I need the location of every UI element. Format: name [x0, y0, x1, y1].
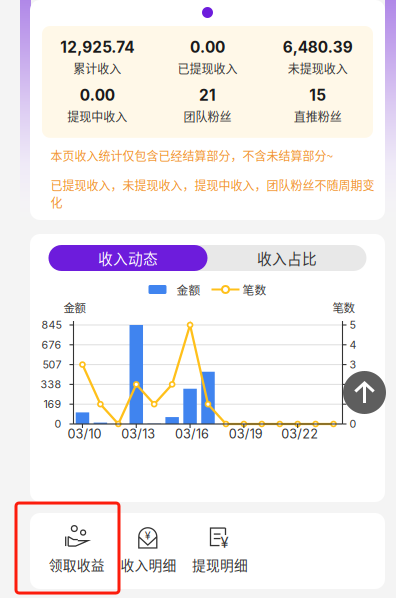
button[interactable]: 收入占比 [207, 245, 366, 271]
staticText: 0 [54, 417, 61, 430]
staticText: 4 [349, 338, 356, 351]
staticText: 5 [349, 318, 355, 331]
staticText: 收入明细 [120, 555, 176, 574]
staticText: 845 [41, 318, 61, 331]
staticText: 21 [199, 86, 216, 104]
staticText: 提现中收入 [67, 107, 127, 125]
staticText: 累计收入 [73, 60, 121, 77]
staticText: 676 [41, 338, 61, 351]
staticText: 169 [43, 398, 61, 411]
staticText: 0 [349, 417, 356, 430]
staticText: 03/10 [67, 426, 101, 442]
staticText: 0.00 [190, 38, 225, 57]
staticText: 笔数 [242, 281, 266, 298]
button[interactable]: ¥ [113, 524, 184, 576]
staticText: 直推粉丝 [294, 107, 342, 125]
staticText: 收入占比 [257, 247, 317, 269]
button[interactable]: ¥ [184, 524, 256, 576]
button[interactable]: 收入动态 [48, 245, 207, 271]
staticText: 15 [309, 86, 326, 104]
staticText: 金额 [63, 299, 85, 316]
staticText: 1 [349, 398, 353, 411]
staticText: 已提现收入 [177, 60, 237, 77]
staticText: 12,925.74 [60, 38, 134, 57]
staticText: 领取收益 [49, 555, 105, 574]
staticText: 团队粉丝 [183, 107, 231, 125]
staticText: 2 [349, 378, 356, 391]
staticText: 03/22 [281, 426, 318, 442]
staticText: 提现明细 [192, 555, 248, 574]
staticText: 金额 [176, 281, 200, 298]
button[interactable]: 领取收益 [41, 524, 113, 576]
staticText: 收入动态 [98, 247, 158, 269]
staticText: 03/13 [121, 426, 155, 442]
staticText: 本页收入统计仅包含已经结算部分，不含未结算部分~ [50, 147, 333, 164]
staticText: 507 [42, 358, 61, 371]
staticText: 03/19 [229, 426, 263, 442]
staticText: 已提现收入，未提现收入，提现中收入，团队粉丝不随周期变化 [50, 176, 374, 211]
staticText: 338 [40, 378, 61, 391]
staticText: 0.00 [80, 86, 115, 104]
button[interactable]: 回到顶部 [343, 371, 386, 414]
staticText: 3 [349, 358, 356, 371]
staticText: 03/16 [175, 426, 209, 442]
staticText: 6,480.39 [283, 38, 353, 57]
staticText: ¥ [221, 534, 229, 551]
staticText: ¥ [145, 529, 151, 542]
staticText: 笔数 [332, 299, 354, 316]
staticText: 未提现收入 [288, 60, 348, 77]
